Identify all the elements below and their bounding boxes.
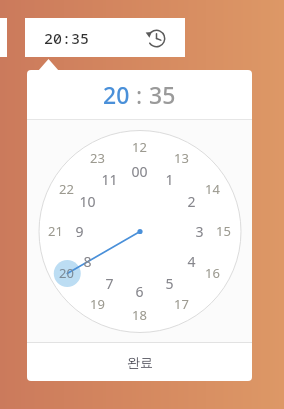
- staticText: 8: [83, 252, 92, 271]
- staticText: 14: [205, 180, 220, 198]
- staticText: 12: [132, 138, 147, 156]
- button[interactable]: 20: [27, 70, 252, 119]
- staticText: 15: [216, 222, 231, 240]
- staticText: 23: [90, 149, 105, 167]
- staticText: 11: [101, 170, 118, 189]
- staticText: 35: [149, 79, 176, 110]
- staticText: 13: [174, 149, 189, 167]
- staticText: 17: [174, 295, 189, 313]
- staticText: 20: [59, 264, 74, 282]
- staticText: 5: [165, 274, 174, 293]
- staticText: 20: [103, 79, 130, 110]
- staticText: 18: [132, 306, 147, 324]
- button[interactable]: 완료: [27, 343, 252, 381]
- staticText: 00: [131, 162, 148, 181]
- staticText: 10: [79, 192, 96, 211]
- staticText: 6: [135, 282, 144, 301]
- button[interactable]: 00: [27, 120, 252, 342]
- staticText: 7: [105, 274, 114, 293]
- staticText: 4: [187, 252, 196, 271]
- button[interactable]: 20:35: [31, 18, 185, 57]
- staticText: 완료: [127, 354, 153, 370]
- staticText: 22: [59, 180, 74, 198]
- staticText: :: [130, 79, 149, 110]
- staticText: 20:35: [44, 28, 90, 48]
- staticText: 19: [90, 295, 105, 313]
- button[interactable]: Reset to current time: [141, 23, 171, 53]
- staticText: 16: [205, 264, 220, 282]
- staticText: 9: [75, 222, 84, 241]
- staticText: 21: [48, 222, 63, 240]
- staticText: 2: [187, 192, 196, 211]
- staticText: 1: [165, 170, 174, 189]
- staticText: 3: [195, 222, 204, 241]
